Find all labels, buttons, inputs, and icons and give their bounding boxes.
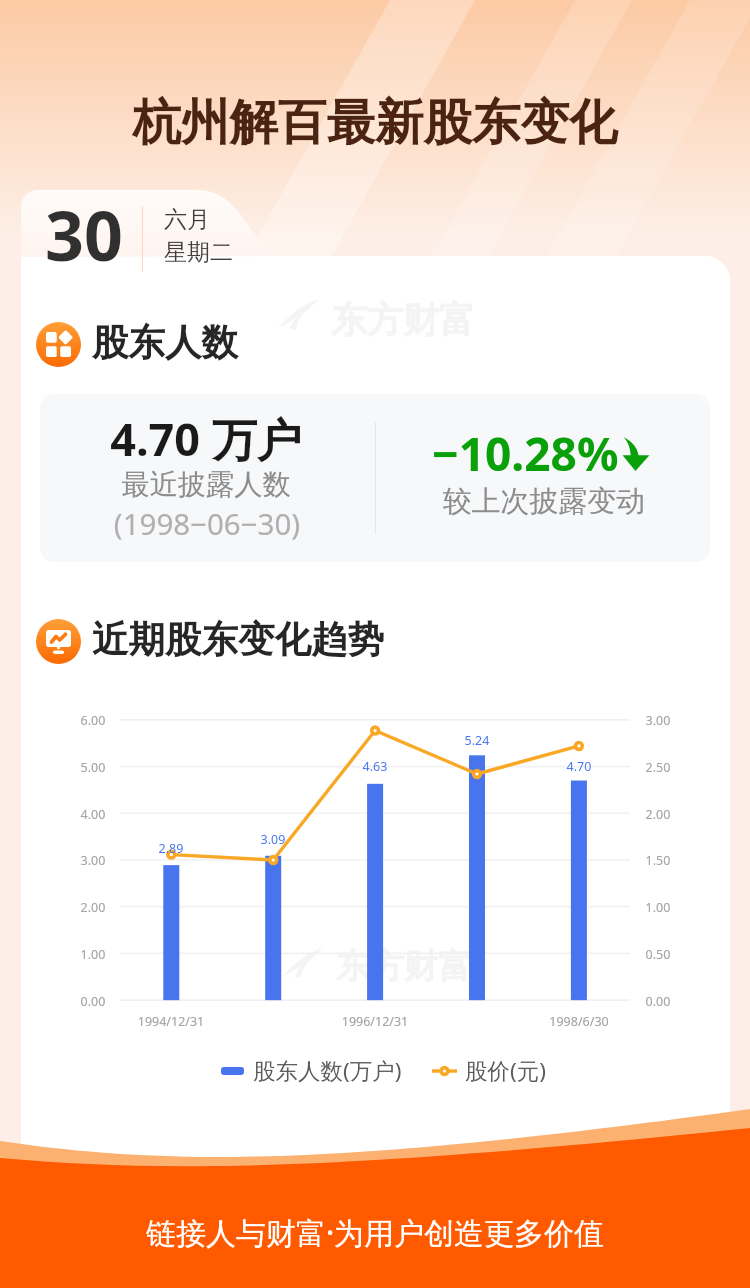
staticText: 4.00 <box>53 806 133 823</box>
staticText: 1.00 <box>618 899 698 916</box>
staticText: 2.00 <box>53 899 133 916</box>
staticText: 股东人数 <box>92 320 238 366</box>
staticText: 1.00 <box>53 946 133 963</box>
other: 股东人数 <box>36 322 81 367</box>
staticText: 东方财富 <box>336 945 472 988</box>
staticText: 东方财富 <box>331 297 475 342</box>
staticText: 3.00 <box>53 852 133 869</box>
button[interactable]: 近期股东变化趋势 <box>36 617 384 665</box>
staticText: −10.28% <box>432 422 619 485</box>
button[interactable]: 股东人数 <box>36 320 238 368</box>
staticText: 较上次披露变动 <box>364 483 724 520</box>
staticText: 3.00 <box>618 712 698 729</box>
staticText: 1996/12/31 <box>295 1013 455 1030</box>
staticText: 股东人数(万户) <box>253 1055 402 1086</box>
staticText: 1.50 <box>618 852 698 869</box>
staticText: 30 <box>45 188 123 281</box>
staticText: 6.00 <box>53 712 133 729</box>
button[interactable]: 股东人数(万户) <box>221 1055 547 1086</box>
staticText: 0.00 <box>618 993 698 1010</box>
staticText: 杭州解百最新股东变化 <box>0 92 750 153</box>
staticText: 1994/12/31 <box>91 1013 251 1030</box>
staticText: 1998/6/30 <box>499 1013 659 1030</box>
staticText: 星期二 <box>164 238 233 267</box>
staticText: 2.89 <box>131 840 211 857</box>
staticText: 0.00 <box>53 993 133 1010</box>
staticText: 3.09 <box>233 831 313 848</box>
staticText: 5.00 <box>53 759 133 776</box>
staticText: 2.00 <box>618 806 698 823</box>
staticText: 链接人与财富·为用户创造更多价值 <box>0 1212 750 1253</box>
staticText: 4.63 <box>335 758 415 775</box>
staticText: (1998−06−30) <box>27 503 387 543</box>
staticText: 股价(元) <box>465 1055 547 1086</box>
staticText: 近期股东变化趋势 <box>92 617 384 663</box>
staticText: 5.24 <box>437 732 517 749</box>
staticText: 4.70 <box>539 758 619 775</box>
staticText: 4.70 万户 <box>26 408 386 469</box>
staticText: 2.50 <box>618 759 698 776</box>
staticText: 最近披露人数 <box>26 467 386 503</box>
staticText: 0.50 <box>618 946 698 963</box>
other: 近期股东变化趋势 <box>36 619 81 664</box>
staticText: 六月 <box>164 205 210 234</box>
